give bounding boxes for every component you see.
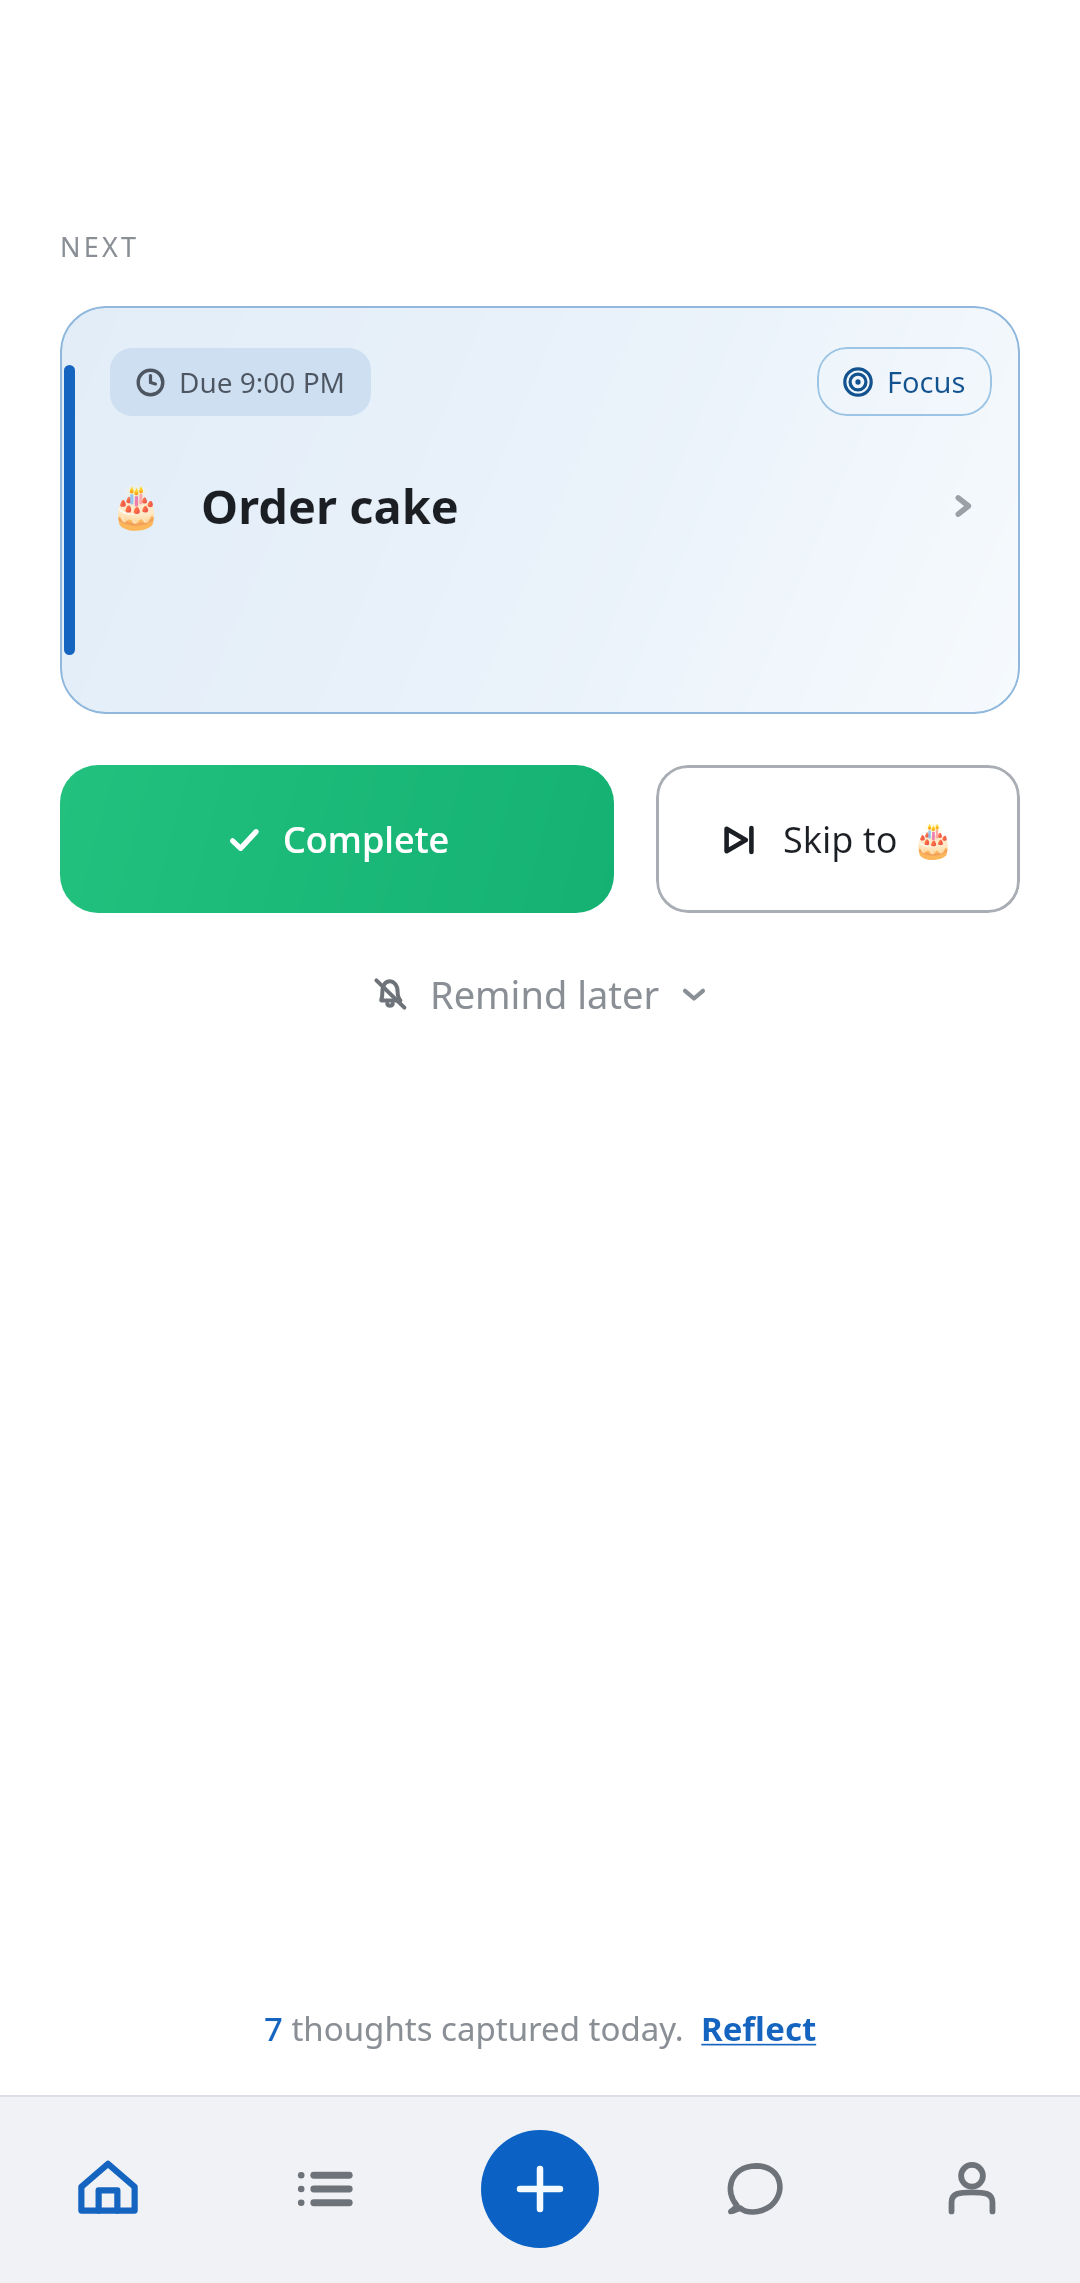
button[interactable]: Home — [0, 2095, 216, 2283]
staticText: Remind later — [430, 968, 660, 1020]
staticText: 7 thoughts captured today. — [264, 2006, 701, 2051]
staticText: 🎂 — [912, 820, 955, 860]
button[interactable]: Lists — [216, 2095, 432, 2283]
button[interactable]: Due 9:00 PM — [60, 306, 1020, 714]
button[interactable]: Add new — [432, 2095, 648, 2283]
staticText: Complete — [283, 815, 450, 864]
button[interactable]: Remind later — [352, 958, 728, 1030]
staticText: Skip to — [783, 815, 898, 864]
staticText: Due 9:00 PM — [179, 363, 345, 401]
button[interactable]: Reflect — [701, 2006, 817, 2051]
button[interactable]: Profile — [864, 2095, 1080, 2283]
staticText: Focus — [887, 362, 966, 401]
button[interactable]: Due 9:00 PM — [110, 348, 371, 416]
staticText: Order cake — [201, 474, 459, 538]
staticText: NEXT — [60, 228, 140, 265]
staticText: 🎂 — [110, 482, 163, 531]
staticText: Reflect — [701, 2006, 817, 2051]
button[interactable]: Complete — [60, 765, 614, 913]
button[interactable]: Skip to — [656, 765, 1020, 913]
button[interactable]: Messages — [648, 2095, 864, 2283]
button[interactable]: Focus — [817, 347, 992, 416]
